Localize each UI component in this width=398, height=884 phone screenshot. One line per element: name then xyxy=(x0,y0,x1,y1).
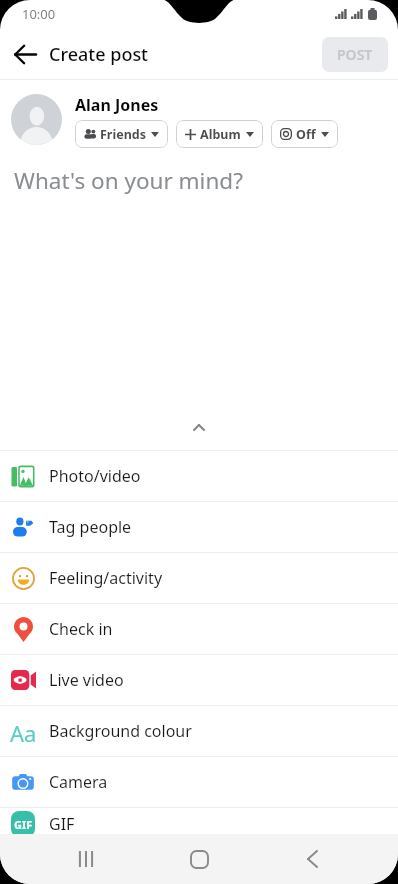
button[interactable]: Home xyxy=(177,837,221,881)
staticText: Tag people xyxy=(49,516,132,538)
staticText: GIF xyxy=(49,813,75,835)
staticText: Background colour xyxy=(49,720,192,742)
button[interactable]: Back xyxy=(8,37,42,71)
staticText: POST xyxy=(337,45,373,64)
button[interactable]: Recents xyxy=(64,837,108,881)
staticText: Aa xyxy=(10,718,37,745)
button[interactable]: Off xyxy=(271,120,338,148)
button[interactable]: Back xyxy=(290,837,334,881)
button[interactable]: Album xyxy=(176,120,263,148)
staticText: Alan Jones xyxy=(75,94,159,116)
button[interactable]: GIF xyxy=(0,808,398,840)
staticText: 10:00 xyxy=(22,5,56,23)
button[interactable]: POST xyxy=(322,37,388,72)
staticText: What's on your mind? xyxy=(14,165,243,196)
staticText: GIF xyxy=(14,817,33,832)
staticText: Off xyxy=(296,126,316,143)
button[interactable]: Collapse xyxy=(0,420,398,450)
staticText: Create post xyxy=(49,42,149,67)
button[interactable]: Photo/video xyxy=(0,451,398,501)
button[interactable]: Friends xyxy=(75,120,168,148)
staticText: Album xyxy=(200,126,241,143)
button[interactable]: Check in xyxy=(0,604,398,654)
staticText: Friends xyxy=(100,126,146,143)
button[interactable]: Feeling/activity xyxy=(0,553,398,603)
staticText: Photo/video xyxy=(49,465,141,487)
button[interactable]: Tag people xyxy=(0,502,398,552)
staticText: Camera xyxy=(49,771,108,793)
button[interactable]: Live video xyxy=(0,655,398,705)
staticText: Live video xyxy=(49,669,124,691)
staticText: Check in xyxy=(49,618,113,640)
button[interactable]: Camera xyxy=(0,757,398,807)
staticText: Feeling/activity xyxy=(49,567,163,589)
button[interactable]: Aa xyxy=(0,706,398,756)
